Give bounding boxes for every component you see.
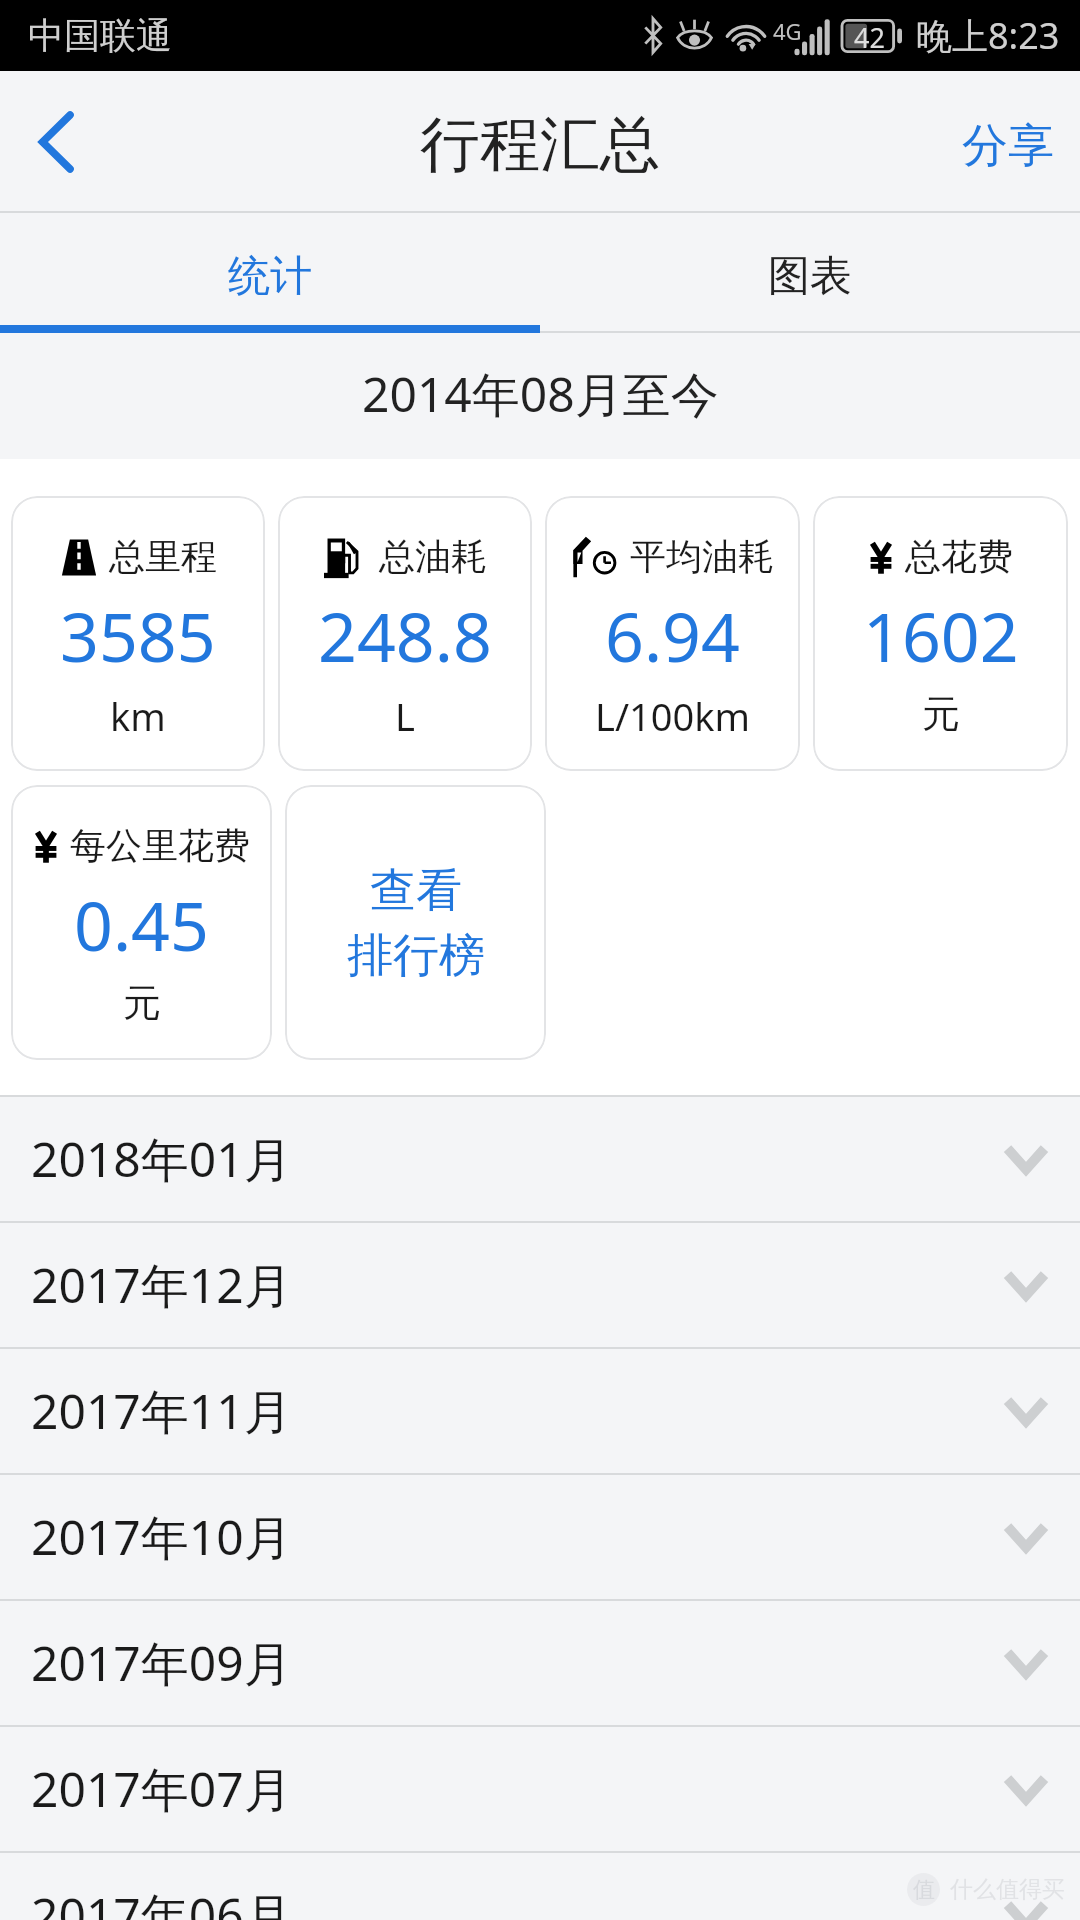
button[interactable]: 统计 (0, 213, 540, 333)
staticText: 2017年11月 (31, 1378, 292, 1444)
staticText: 元 (922, 690, 960, 738)
other: Expand (1005, 1902, 1047, 1920)
staticText: 行程汇总 (420, 107, 660, 183)
staticText: 42 (854, 19, 885, 53)
button[interactable]: 2018年01月 (0, 1097, 1080, 1221)
staticText: 2017年09月 (31, 1630, 292, 1696)
button[interactable]: Back (0, 71, 112, 213)
staticText: 2018年01月 (31, 1126, 292, 1192)
button[interactable]: 2017年10月 (0, 1475, 1080, 1599)
button[interactable]: 总油耗 (278, 496, 532, 771)
staticText: 晚上8:23 (916, 11, 1060, 60)
button[interactable]: 图表 (540, 213, 1080, 333)
other: Expand (1005, 1272, 1047, 1298)
button[interactable]: 平均油耗 (545, 496, 800, 771)
other: Expand (1005, 1524, 1047, 1550)
staticText: 每公里花费 (70, 823, 250, 868)
staticText: 4G (773, 16, 802, 46)
button[interactable]: 查看 排行榜 (285, 785, 546, 1060)
staticText: 查看 排行榜 (347, 862, 485, 984)
staticText: 总油耗 (379, 534, 487, 579)
staticText: 248.8 (318, 589, 492, 682)
staticText: 2017年07月 (31, 1756, 292, 1822)
staticText: 6.94 (605, 589, 740, 682)
staticText: 分享 (962, 117, 1054, 175)
other: Expand (1005, 1650, 1047, 1676)
staticText: 平均油耗 (630, 534, 774, 579)
staticText: 总花费 (905, 534, 1013, 579)
other: Expand (1005, 1398, 1047, 1424)
staticText: km (110, 690, 166, 742)
staticText: 2017年06月 (31, 1882, 292, 1920)
button[interactable]: 分享 (936, 71, 1080, 213)
staticText: 图表 (768, 250, 852, 303)
button[interactable]: 2017年07月 (0, 1727, 1080, 1851)
button[interactable]: 2017年09月 (0, 1601, 1080, 1725)
staticText: 1602 (863, 589, 1019, 682)
staticText: 什么值得买 (950, 1875, 1065, 1904)
staticText: L (395, 690, 415, 742)
staticText: 统计 (228, 250, 312, 303)
staticText: 0.45 (74, 878, 209, 971)
button[interactable]: 每公里花费 (11, 785, 272, 1060)
staticText: 2017年10月 (31, 1504, 292, 1570)
button[interactable]: 2017年12月 (0, 1223, 1080, 1347)
staticText: L/100km (595, 690, 751, 742)
button[interactable]: 2017年06月 (0, 1853, 1080, 1920)
other: Expand (1005, 1146, 1047, 1172)
button[interactable]: 总里程 (11, 496, 265, 771)
staticText: 3585 (60, 589, 216, 682)
staticText: 元 (123, 979, 161, 1027)
staticText: 2014年08月至今 (362, 361, 719, 427)
staticText: 值 (913, 1876, 935, 1904)
other: Expand (1005, 1776, 1047, 1802)
staticText: 总里程 (109, 534, 217, 579)
button[interactable]: 2017年11月 (0, 1349, 1080, 1473)
button[interactable]: 总花费 (813, 496, 1068, 771)
staticText: 中国联通 (28, 13, 172, 58)
staticText: 2017年12月 (31, 1252, 292, 1318)
